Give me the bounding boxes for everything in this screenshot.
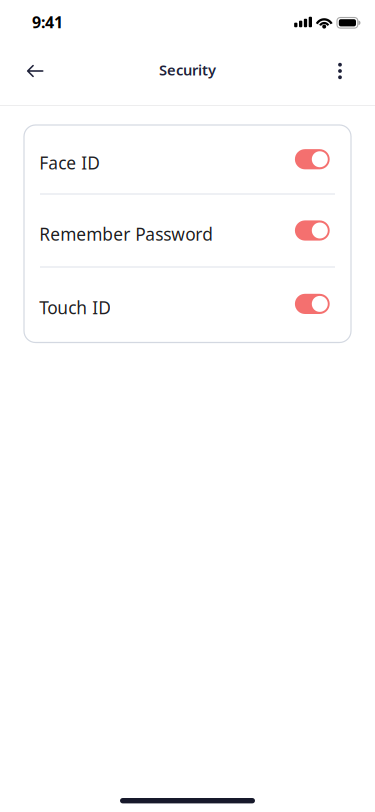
button[interactable]: On	[24, 267, 351, 340]
staticText: 9:41	[32, 11, 63, 33]
button[interactable]: More options	[318, 49, 362, 93]
button[interactable]: On	[24, 194, 351, 266]
button[interactable]: Back	[13, 49, 57, 93]
button[interactable]: On	[24, 125, 351, 193]
staticText: Touch ID	[39, 296, 111, 319]
staticText: Security	[159, 60, 216, 80]
staticText: Remember Password	[39, 222, 213, 245]
staticText: Face ID	[39, 151, 100, 174]
